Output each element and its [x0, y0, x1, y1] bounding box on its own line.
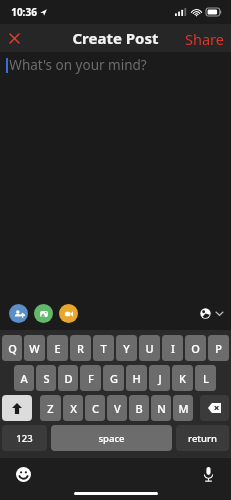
- button[interactable]: V: [107, 395, 127, 421]
- button[interactable]: T: [93, 335, 114, 361]
- button[interactable]: Y: [116, 335, 137, 361]
- staticText: 10:36: [11, 5, 37, 19]
- button[interactable]: Voice input: [195, 461, 221, 487]
- staticText: What's on your mind?: [9, 56, 147, 74]
- staticText: N: [157, 401, 166, 416]
- staticText: U: [145, 341, 154, 356]
- button[interactable]: X: [63, 395, 83, 421]
- button[interactable]: P: [208, 335, 229, 361]
- staticText: Q: [8, 341, 17, 356]
- button[interactable]: 123: [2, 425, 47, 451]
- staticText: Z: [47, 401, 54, 416]
- staticText: A: [20, 371, 28, 386]
- button[interactable]: E: [47, 335, 68, 361]
- button[interactable]: A: [14, 365, 34, 391]
- button[interactable]: M: [173, 395, 193, 421]
- button[interactable]: J: [149, 365, 170, 391]
- staticText: K: [179, 371, 186, 386]
- button[interactable]: Q: [2, 335, 22, 361]
- staticText: Create Post: [72, 28, 159, 48]
- button[interactable]: O: [185, 335, 206, 361]
- button[interactable]: Emoji: [10, 461, 36, 487]
- button[interactable]: Audience Public: [192, 303, 231, 324]
- staticText: M: [178, 401, 189, 416]
- button[interactable]: R: [70, 335, 91, 361]
- button[interactable]: Tag people: [9, 304, 28, 323]
- button[interactable]: I: [162, 335, 183, 361]
- button[interactable]: K: [172, 365, 193, 391]
- staticText: F: [88, 371, 94, 386]
- button[interactable]: D: [58, 365, 78, 391]
- staticText: J: [158, 371, 162, 386]
- button[interactable]: Backspace: [200, 395, 229, 421]
- staticText: Y: [123, 341, 130, 356]
- button[interactable]: F: [80, 365, 101, 391]
- button[interactable]: Share: [178, 24, 231, 52]
- button[interactable]: Shift: [2, 395, 32, 421]
- button[interactable]: H: [126, 365, 147, 391]
- button[interactable]: N: [151, 395, 171, 421]
- staticText: L: [203, 371, 209, 386]
- staticText: V: [114, 401, 121, 416]
- button[interactable]: Video: [59, 304, 78, 323]
- staticText: G: [110, 371, 118, 386]
- staticText: B: [135, 401, 143, 416]
- staticText: T: [100, 341, 107, 356]
- staticText: I: [171, 341, 175, 356]
- button[interactable]: L: [195, 365, 216, 391]
- staticText: R: [77, 341, 84, 356]
- button[interactable]: C: [85, 395, 105, 421]
- button[interactable]: return: [176, 425, 229, 451]
- staticText: P: [215, 341, 222, 356]
- button[interactable]: space: [51, 425, 172, 451]
- staticText: S: [43, 371, 50, 386]
- staticText: D: [64, 371, 73, 386]
- staticText: C: [92, 401, 99, 416]
- button[interactable]: What's on your mind?: [0, 52, 231, 296]
- staticText: W: [29, 341, 40, 356]
- staticText: space: [98, 432, 125, 445]
- button[interactable]: Z: [40, 395, 61, 421]
- button[interactable]: W: [24, 335, 45, 361]
- staticText: X: [70, 401, 77, 416]
- staticText: E: [54, 341, 61, 356]
- staticText: Share: [185, 29, 224, 47]
- staticText: H: [132, 371, 141, 386]
- staticText: return: [188, 432, 217, 445]
- button[interactable]: Photo: [34, 304, 53, 323]
- button[interactable]: Close: [0, 24, 28, 52]
- button[interactable]: S: [36, 365, 56, 391]
- button[interactable]: B: [129, 395, 149, 421]
- button[interactable]: G: [103, 365, 124, 391]
- button[interactable]: U: [139, 335, 160, 361]
- staticText: 123: [16, 432, 33, 445]
- staticText: O: [191, 341, 200, 356]
